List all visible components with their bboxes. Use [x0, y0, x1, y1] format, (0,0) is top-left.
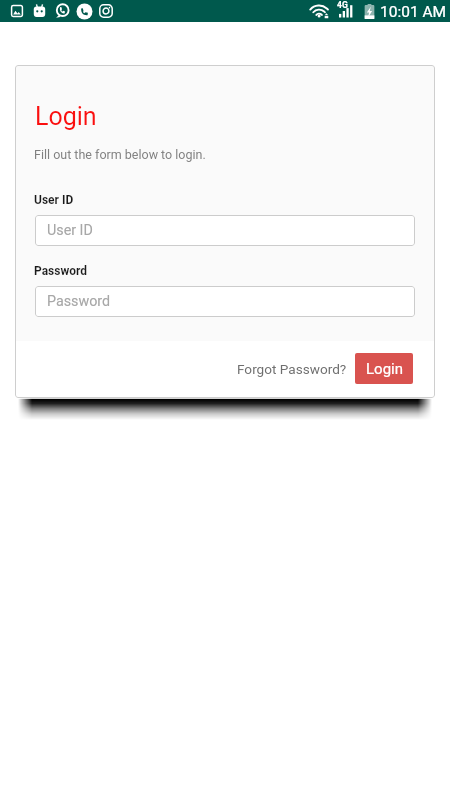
staticText: Password — [47, 293, 111, 310]
other: Screenshot captured — [11, 5, 23, 17]
other: Android system — [33, 4, 46, 18]
other: Wi-Fi connected — [311, 4, 329, 18]
button[interactable]: Forgot Password? — [233, 356, 351, 382]
button[interactable]: Password — [35, 286, 415, 317]
staticText: 4G — [337, 0, 348, 10]
button[interactable]: User ID — [35, 215, 415, 246]
staticText: Login — [35, 102, 97, 131]
other: Instagram — [99, 4, 113, 18]
staticText: 10:01 AM — [380, 3, 447, 21]
other: 4G signal strength — [337, 1, 353, 20]
staticText: Login — [366, 360, 403, 378]
other: Missed call — [76, 3, 93, 20]
staticText: Password — [34, 264, 88, 278]
staticText: User ID — [34, 193, 74, 207]
other: Battery charging — [364, 4, 375, 19]
other: WhatsApp message — [55, 4, 69, 18]
staticText: User ID — [47, 222, 93, 239]
staticText: Fill out the form below to login. — [34, 147, 206, 162]
button[interactable]: Login — [355, 353, 413, 384]
staticText: Forgot Password? — [237, 361, 347, 377]
